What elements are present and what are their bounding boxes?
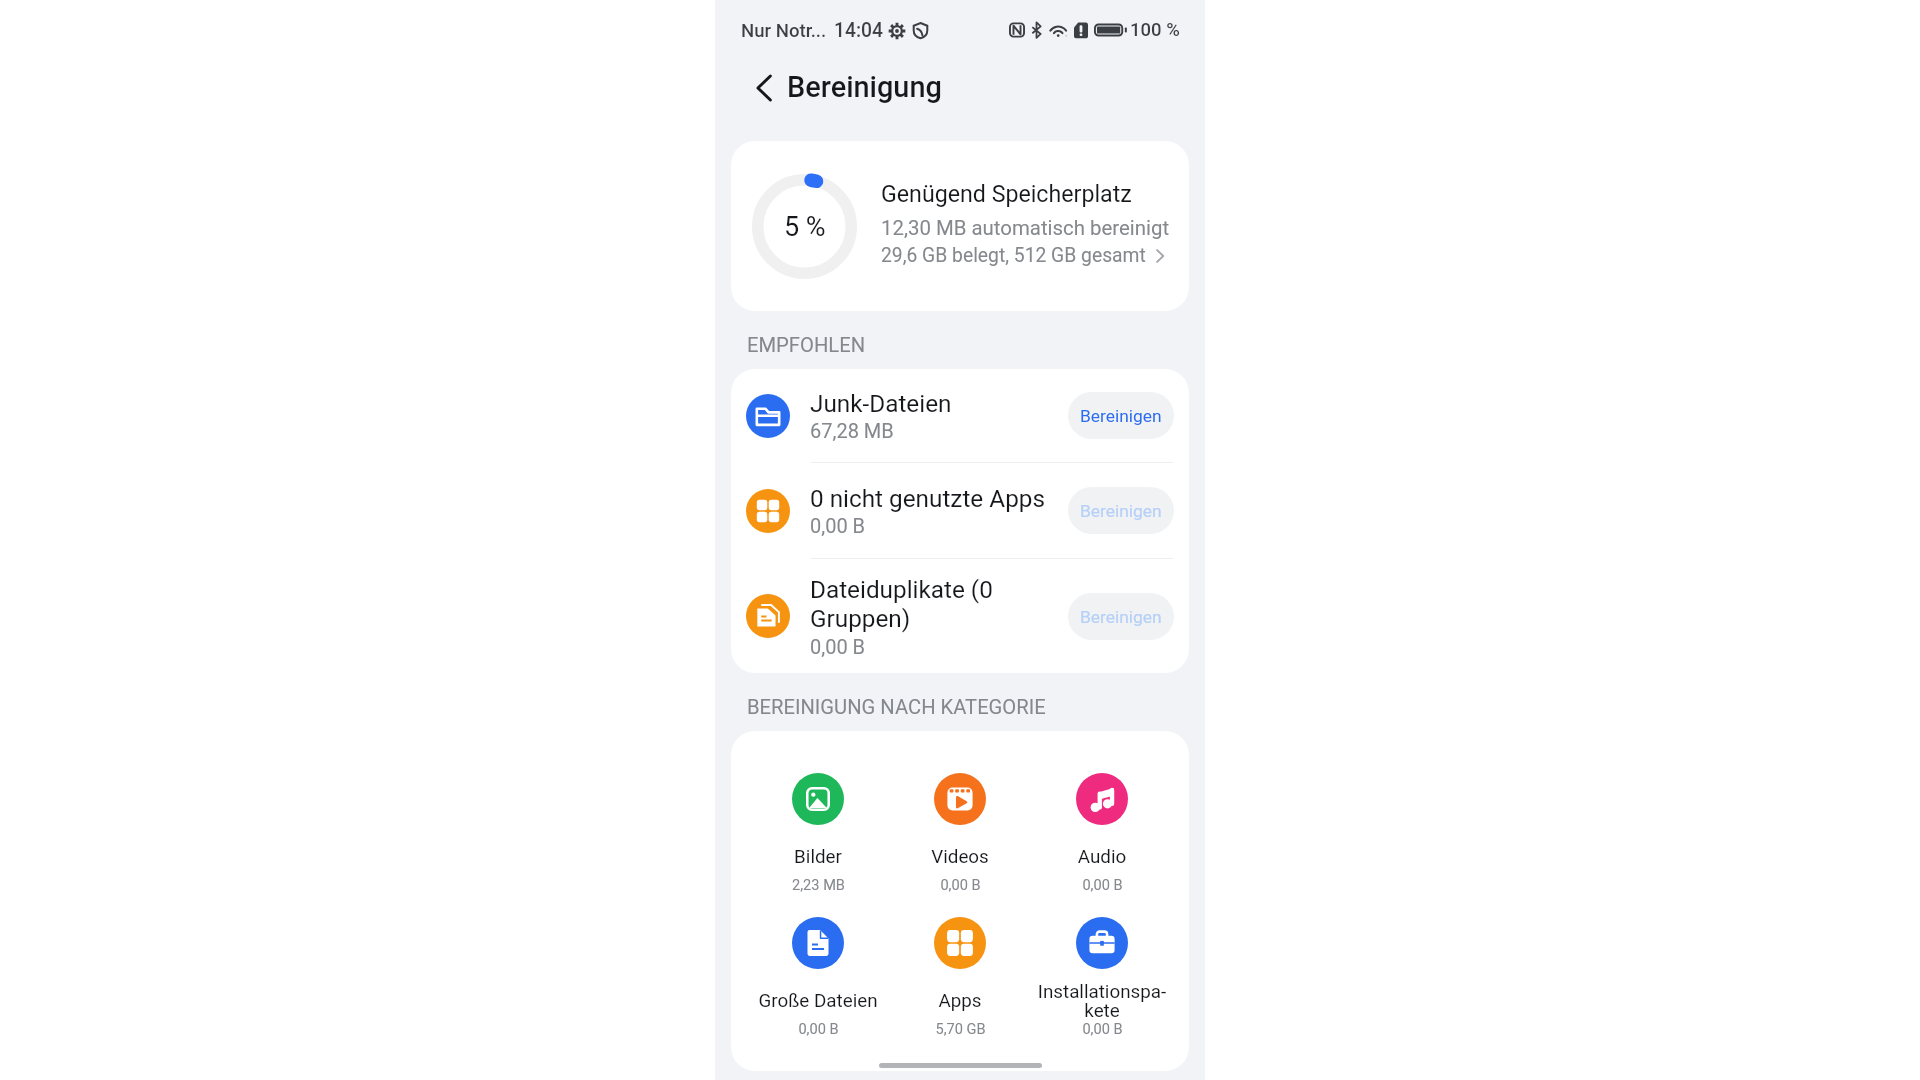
staticText: Genügend Speicherplatz [881,180,1132,207]
staticText: Installationspa- kete [1031,981,1173,1021]
button[interactable]: Videos [889,773,1031,893]
staticText: 100 % [1130,19,1180,41]
staticText: 0,00 B [810,514,866,537]
staticText: 12,30 MB automatisch bereinigt [881,216,1170,240]
staticText: Bilder [747,846,889,868]
staticText: Audio [1031,846,1173,868]
staticText: Apps [889,990,1031,1012]
staticText: Bereinigen [1080,607,1162,627]
button[interactable]: Bereinigen [1068,593,1174,640]
button[interactable]: Audio [1031,773,1173,893]
button[interactable]: Junk-Dateien [731,369,1189,462]
staticText: Videos [889,846,1031,868]
button[interactable]: Apps [889,917,1031,1037]
staticText: Dateiduplikate (0 Gruppen) [810,575,993,633]
button[interactable]: Bereinigen [1068,392,1174,439]
staticText: Große Dateien [747,990,889,1012]
staticText: 67,28 MB [810,419,894,442]
staticText: 5,70 GB [935,1020,986,1037]
staticText: 0,00 B [1082,876,1123,893]
staticText: EMPFOHLEN [747,333,866,357]
staticText: 0,00 B [810,635,866,658]
button[interactable]: 0 nicht genutzte Apps [731,463,1189,558]
button[interactable]: Installationspa- kete [1031,917,1173,1037]
staticText: Nur Notr... [741,20,827,42]
staticText: Bereinigen [1080,501,1162,521]
button[interactable]: Große Dateien [747,917,889,1037]
staticText: 14:04 [834,19,883,42]
staticText: 2,23 MB [792,876,845,893]
staticText: Bereinigen [1080,406,1162,426]
staticText: 0,00 B [940,876,981,893]
button[interactable]: Bilder [747,773,889,893]
button[interactable]: Bereinigen [1068,487,1174,534]
staticText: 29,6 GB belegt, 512 GB gesamt [881,244,1146,267]
staticText: 5 % [784,211,826,243]
staticText: 0 nicht genutzte Apps [810,484,1045,512]
button[interactable]: Zurück [747,71,781,105]
staticText: 0,00 B [798,1020,839,1037]
button[interactable]: 5 % [731,141,1189,311]
staticText: Bereinigung [787,70,942,104]
staticText: BEREINIGUNG NACH KATEGORIE [747,695,1046,719]
staticText: 0,00 B [1082,1020,1123,1037]
staticText: Junk-Dateien [810,389,952,417]
button[interactable]: Dateiduplikate (0 Gruppen) [731,559,1189,673]
